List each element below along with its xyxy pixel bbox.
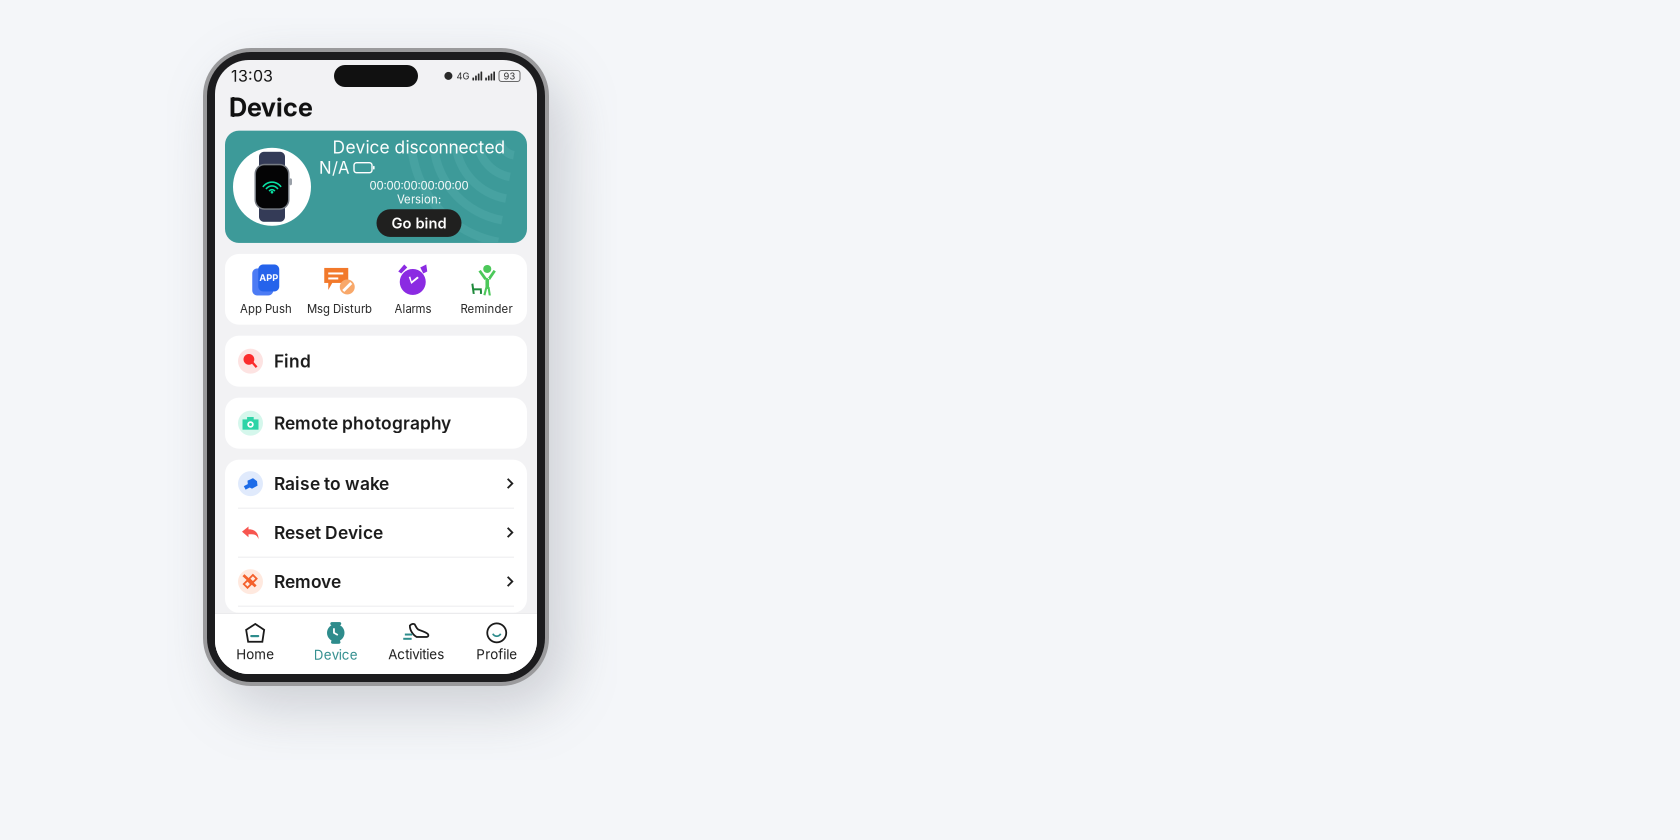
staticText: Remove	[274, 571, 341, 592]
button[interactable]: Raise to wake	[225, 460, 527, 508]
staticText: 4G	[456, 70, 469, 82]
staticText: N/A	[319, 158, 349, 178]
button[interactable]: Reminder	[449, 254, 523, 325]
staticText: Alarms	[394, 302, 431, 316]
staticText: Device	[229, 92, 313, 123]
staticText: 93	[503, 70, 515, 82]
button[interactable]: Find	[225, 336, 527, 387]
button[interactable]: Remote photography	[225, 398, 527, 449]
button[interactable]: APP	[229, 254, 302, 325]
button[interactable]: Reset Device	[225, 509, 527, 557]
button[interactable]: Go bind	[376, 209, 461, 237]
button[interactable]: Activities	[376, 613, 456, 673]
staticText: App Push	[240, 302, 292, 316]
staticText: Reset Device	[274, 522, 383, 543]
staticText: Device disconnected	[332, 137, 505, 158]
button[interactable]: Device	[295, 613, 376, 674]
staticText: Device	[314, 647, 358, 663]
button[interactable]: Msg Disturb	[302, 254, 376, 325]
button[interactable]: Profile	[456, 613, 537, 673]
staticText: 13:03	[231, 66, 273, 86]
button[interactable]: Alarms	[376, 254, 449, 325]
staticText: Go bind	[391, 214, 446, 232]
staticText: Home	[236, 646, 274, 662]
staticText: Msg Disturb	[307, 302, 372, 316]
staticText: Activities	[388, 646, 444, 662]
staticText: Reminder	[460, 302, 512, 316]
staticText: Profile	[476, 646, 517, 662]
button[interactable]: Remove	[225, 558, 527, 606]
staticText: APP	[259, 272, 278, 284]
button[interactable]: Home	[215, 613, 295, 673]
staticText: Raise to wake	[274, 473, 389, 494]
staticText: Version:	[397, 192, 441, 206]
staticText: Remote photography	[274, 413, 451, 434]
staticText: Find	[274, 351, 311, 372]
staticText: 00:00:00:00:00:00	[369, 179, 468, 192]
